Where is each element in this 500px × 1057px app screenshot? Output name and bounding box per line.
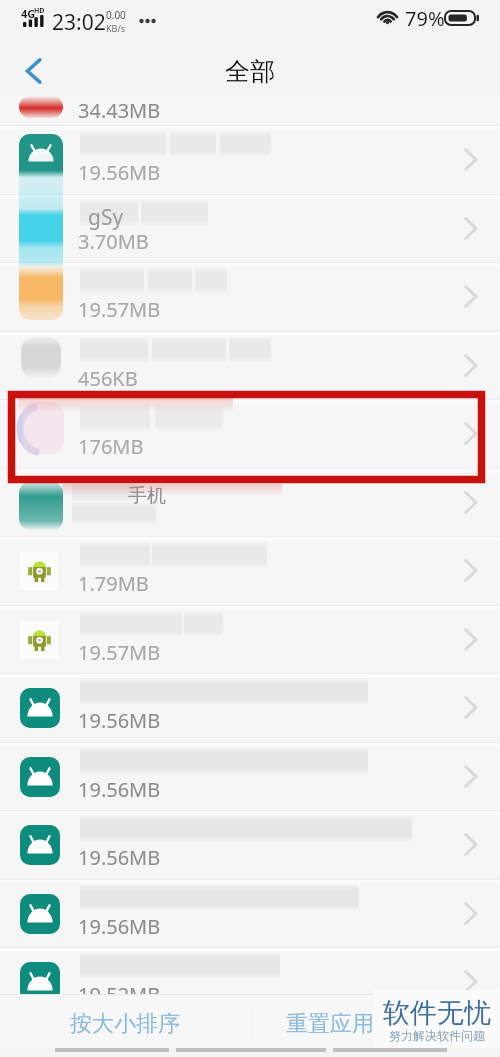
- staticText: gSy: [88, 203, 124, 232]
- staticText: 努力解决软件问题: [389, 1028, 485, 1043]
- staticText: 19.56MB: [78, 913, 161, 940]
- button[interactable]: 19.56MB: [0, 879, 500, 948]
- button[interactable]: 19.56MB: [0, 742, 500, 811]
- button[interactable]: 19.52MB: [0, 947, 500, 1016]
- staticText: 0.00: [106, 8, 126, 22]
- staticText: 1.79MB: [78, 570, 149, 597]
- staticText: 176MB: [78, 433, 144, 460]
- staticText: 按大小排序: [70, 1010, 180, 1038]
- staticText: 19.57MB: [78, 296, 161, 323]
- staticText: 19.56MB: [78, 776, 161, 803]
- button[interactable]: 重置应用: [252, 995, 408, 1048]
- button[interactable]: 19.57MB: [0, 605, 500, 674]
- staticText: 23:02: [52, 8, 106, 37]
- staticText: 19.56MB: [78, 159, 161, 186]
- button[interactable]: 按大小排序: [0, 995, 250, 1048]
- staticText: 软件无忧: [383, 996, 491, 1030]
- staticText: 3.70MB: [78, 228, 149, 255]
- staticText: KB/s: [106, 22, 126, 34]
- button[interactable]: 3.70MB: [0, 194, 500, 263]
- staticText: 34.43MB: [78, 97, 161, 124]
- button[interactable]: 19.56MB: [0, 125, 500, 194]
- button[interactable]: 19.57MB: [0, 262, 500, 331]
- staticText: 重置应用: [286, 1010, 374, 1038]
- staticText: 全部: [225, 56, 275, 87]
- button[interactable]: 176MB: [0, 399, 500, 468]
- button[interactable]: 456KB: [0, 331, 500, 400]
- staticText: 4G: [21, 6, 36, 21]
- staticText: 456KB: [78, 365, 138, 392]
- button[interactable]: 1.79MB: [0, 536, 500, 605]
- staticText: 19.57MB: [78, 639, 161, 666]
- staticText: HD: [34, 6, 45, 16]
- button[interactable]: 19.56MB: [0, 673, 500, 742]
- staticText: 19.52MB: [78, 981, 161, 1008]
- button[interactable]: [0, 468, 500, 537]
- staticText: 79%: [405, 5, 445, 32]
- button[interactable]: 19.56MB: [0, 810, 500, 879]
- button[interactable]: Back: [0, 46, 66, 96]
- staticText: 手机: [128, 484, 166, 508]
- staticText: 19.56MB: [78, 844, 161, 871]
- staticText: 19.56MB: [78, 707, 161, 734]
